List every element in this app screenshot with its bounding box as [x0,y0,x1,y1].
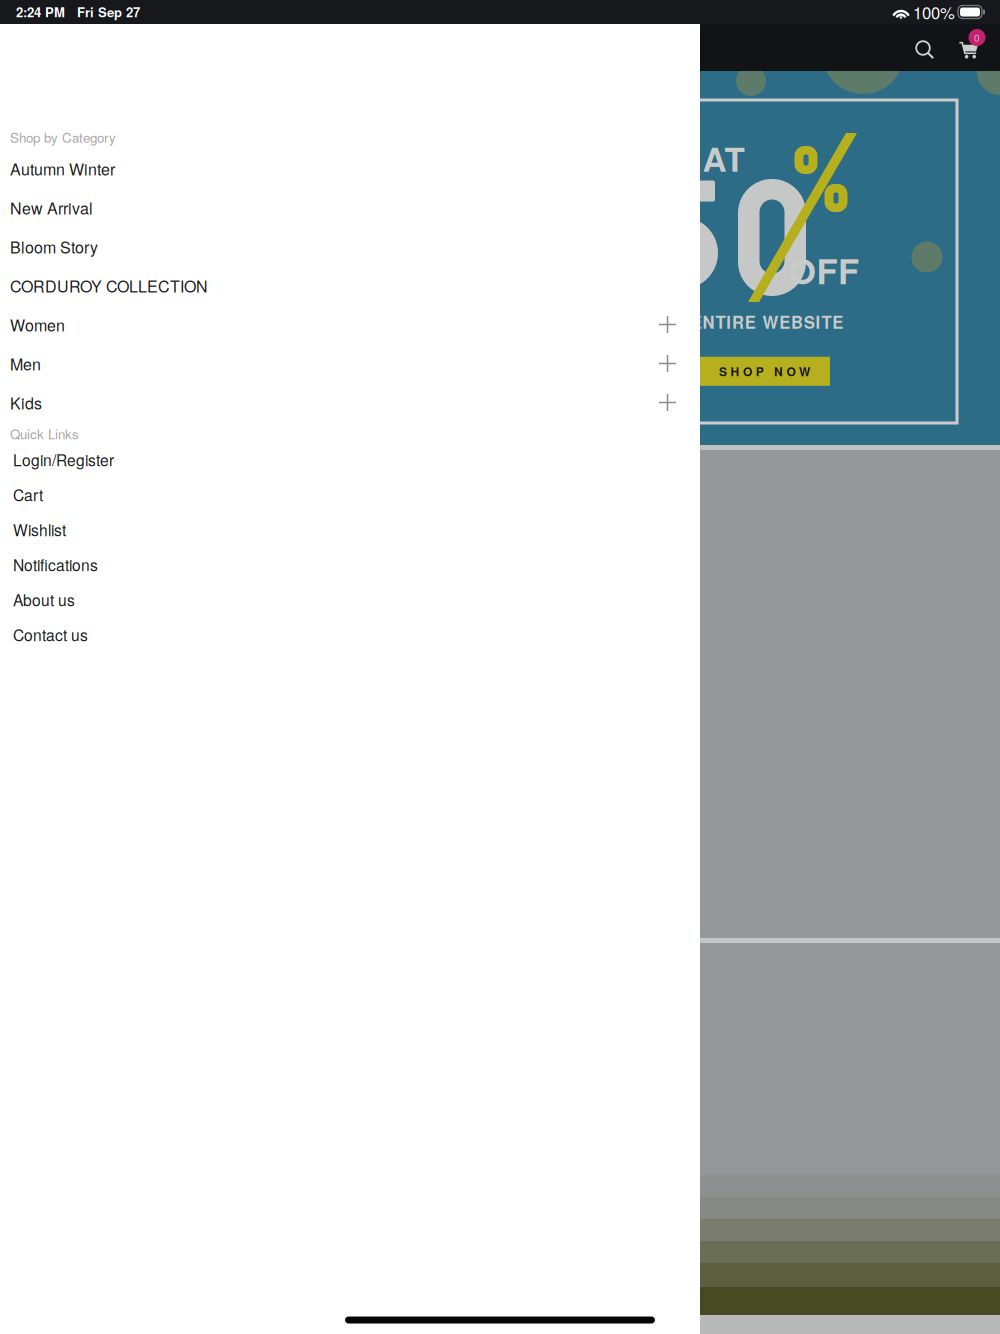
button[interactable]: Men [0,344,700,383]
staticText: Cart [13,483,43,506]
button[interactable]: Contact us [0,617,700,652]
staticText: 0 [974,30,980,45]
button[interactable]: Bloom Story [0,227,700,266]
staticText: 100% [913,0,955,24]
staticText: Men [10,352,41,375]
staticText: OFF [789,245,859,295]
button[interactable]: Cart [0,477,700,512]
button[interactable]: Autumn Winter [0,149,700,188]
button[interactable]: Kids [0,383,700,422]
staticText: FLAT [659,134,744,182]
staticText: SHOP NOW [719,363,810,380]
staticText: Kids [10,391,42,414]
button[interactable]: CORDUROY COLLECTION [0,266,700,305]
staticText: Wishlist [13,518,66,541]
button[interactable]: Women [0,305,700,344]
staticText: Autumn Winter [10,157,115,180]
staticText: Login/Register [13,448,114,471]
button[interactable]: SHOP NOW [699,357,830,386]
staticText: Women [10,313,65,336]
button[interactable]: New Arrival [0,188,700,227]
staticText: CORDUROY COLLECTION [10,274,208,297]
button[interactable]: Cart [959,36,989,66]
staticText: 2:24 PM [16,3,65,21]
staticText: Contact us [13,623,88,646]
staticText: Shop by Category [10,127,116,147]
button[interactable]: Wishlist [0,512,700,547]
staticText: Quick Links [10,424,79,443]
button[interactable]: Notifications [0,547,700,582]
button[interactable]: About us [0,582,700,617]
staticText: Fri Sep 27 [77,3,140,21]
staticText: ENTIRE WEBSITE [691,310,843,334]
button[interactable]: Login/Register [0,442,700,477]
staticText: Notifications [13,553,98,576]
staticText: Bloom Story [10,235,98,258]
staticText: New Arrival [10,196,93,219]
button[interactable]: Search [913,38,949,74]
staticText: About us [13,588,75,611]
